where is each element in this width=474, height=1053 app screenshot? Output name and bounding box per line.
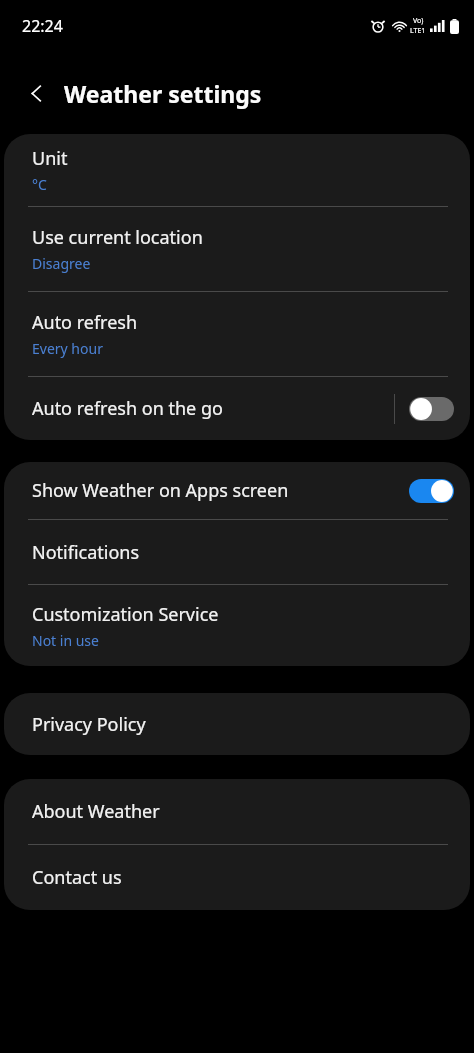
button[interactable]: Use current location: [4, 207, 470, 291]
staticText: Contact us: [32, 865, 122, 890]
staticText: Weather settings: [64, 78, 262, 109]
staticText: Auto refresh on the go: [32, 396, 223, 421]
staticText: Not in use: [32, 631, 99, 650]
button[interactable]: Auto refresh: [4, 292, 470, 376]
button[interactable]: Back: [14, 71, 58, 115]
staticText: Show Weather on Apps screen: [32, 478, 289, 503]
staticText: Notifications: [32, 540, 140, 565]
staticText: LTE1: [410, 26, 426, 36]
button[interactable]: Notifications: [4, 520, 470, 584]
staticText: About Weather: [32, 799, 160, 824]
staticText: Auto refresh: [32, 310, 138, 335]
button[interactable]: About Weather: [4, 779, 470, 844]
button[interactable]: Auto refresh on the go: [4, 377, 470, 440]
button[interactable]: Customization Service: [4, 585, 470, 666]
staticText: Unit: [32, 146, 68, 171]
button[interactable]: Contact us: [4, 845, 470, 910]
button[interactable]: Show Weather on Apps screen: [4, 462, 470, 519]
button[interactable]: Unit: [4, 134, 470, 206]
staticText: Use current location: [32, 225, 203, 250]
staticText: Vo): [413, 16, 424, 26]
staticText: Disagree: [32, 254, 91, 273]
staticText: 22:24: [22, 15, 63, 37]
staticText: Privacy Policy: [32, 712, 146, 737]
staticText: Every hour: [32, 339, 103, 358]
button[interactable]: Privacy Policy: [4, 693, 470, 755]
staticText: °C: [32, 175, 47, 194]
staticText: Customization Service: [32, 602, 219, 627]
